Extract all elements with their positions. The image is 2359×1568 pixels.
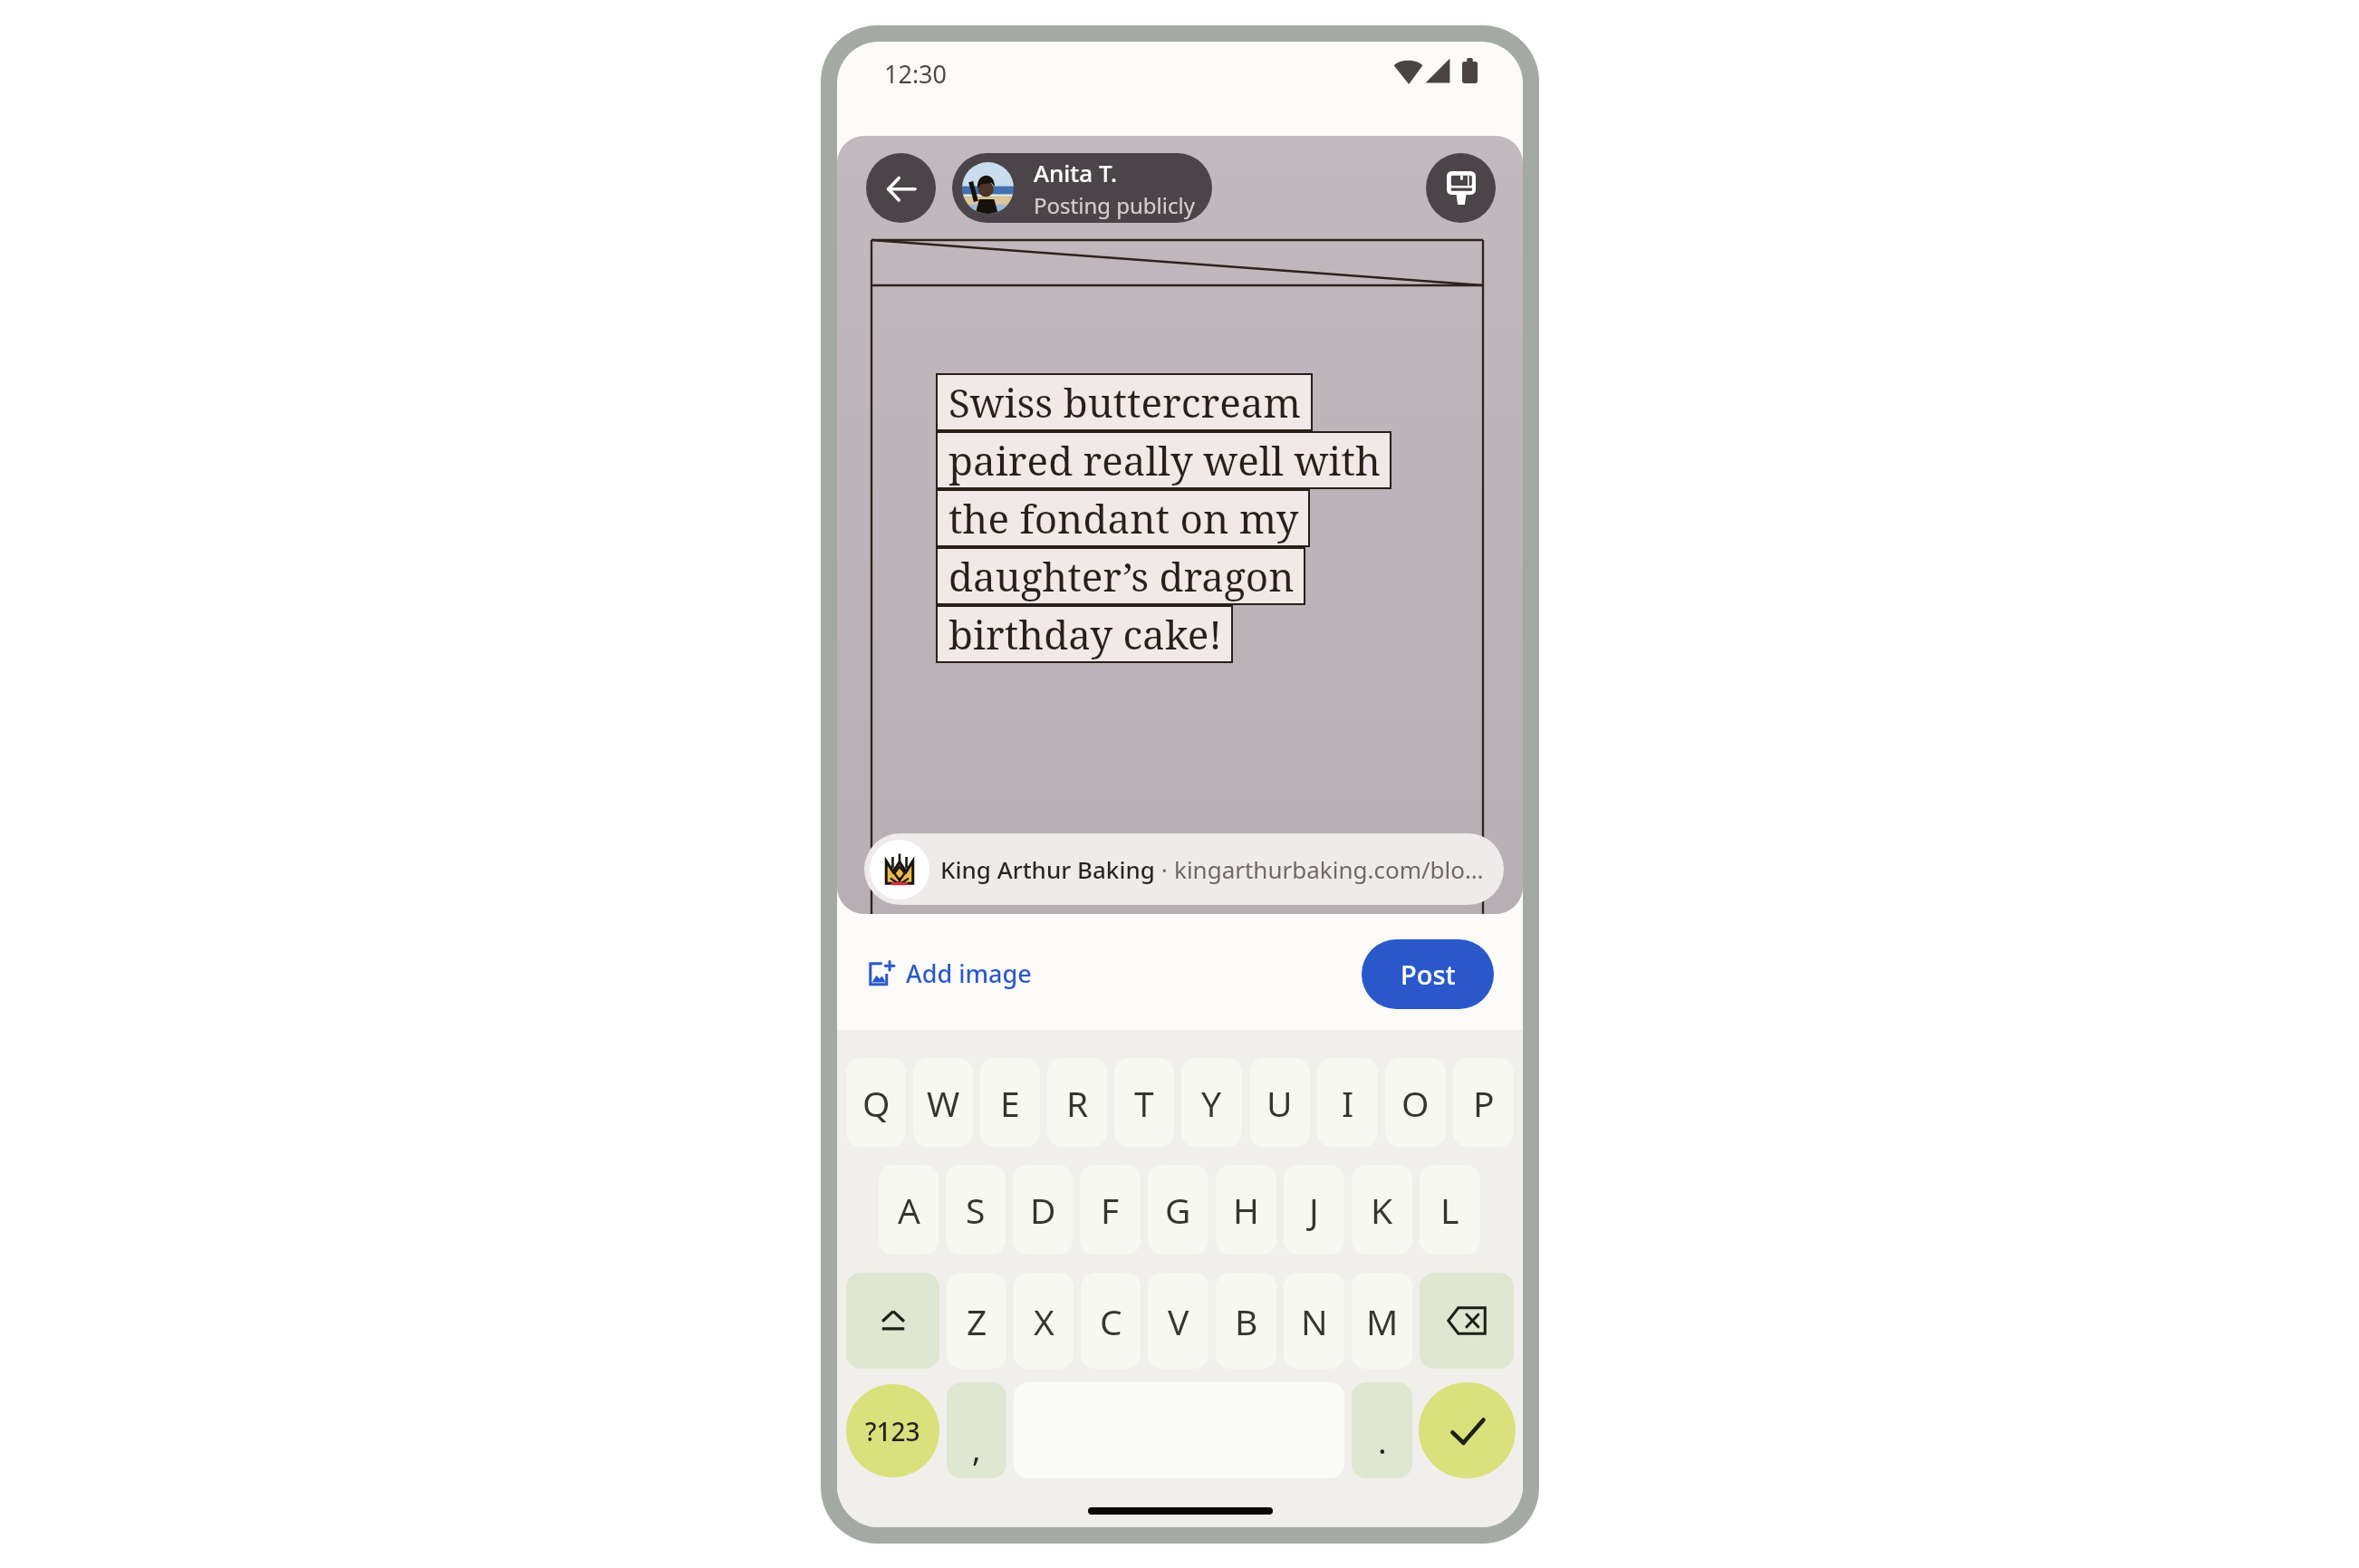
- button[interactable]: U: [1249, 1058, 1310, 1147]
- button[interactable]: Change style: [1426, 153, 1496, 223]
- staticText: kingarthurbaking.com/blo…: [1174, 853, 1484, 885]
- button[interactable]: A: [879, 1165, 939, 1255]
- staticText: O: [1401, 1079, 1430, 1127]
- button[interactable]: H: [1216, 1165, 1276, 1255]
- staticText: ·: [1155, 853, 1174, 885]
- button[interactable]: Back: [866, 153, 936, 223]
- staticText: .: [1378, 1419, 1387, 1464]
- staticText: ,: [972, 1427, 981, 1471]
- staticText: R: [1066, 1079, 1089, 1127]
- staticText: A: [898, 1186, 920, 1234]
- staticText: B: [1235, 1297, 1258, 1345]
- staticText: Swiss buttercream: [948, 375, 1302, 429]
- button[interactable]: N: [1284, 1273, 1344, 1369]
- staticText: G: [1165, 1186, 1191, 1234]
- button[interactable]: Shift: [846, 1273, 939, 1369]
- button[interactable]: K: [1352, 1165, 1412, 1255]
- staticText: V: [1168, 1297, 1189, 1345]
- staticText: H: [1233, 1186, 1259, 1234]
- staticText: Q: [862, 1079, 891, 1127]
- staticText: King Arthur Baking: [940, 853, 1155, 885]
- button[interactable]: L: [1420, 1165, 1480, 1255]
- staticText: N: [1301, 1297, 1328, 1345]
- button[interactable]: C: [1081, 1273, 1141, 1369]
- button[interactable]: E: [980, 1058, 1040, 1147]
- staticText: D: [1030, 1186, 1056, 1234]
- staticText: the fondant on my: [948, 491, 1299, 545]
- button[interactable]: O: [1385, 1058, 1446, 1147]
- staticText: daughter’s dragon: [948, 549, 1295, 603]
- button[interactable]: Add image: [857, 951, 1043, 996]
- staticText: E: [1000, 1079, 1020, 1127]
- staticText: T: [1134, 1079, 1154, 1127]
- staticText: ?123: [865, 1414, 920, 1448]
- staticText: C: [1100, 1297, 1122, 1345]
- staticText: J: [1309, 1186, 1319, 1234]
- button[interactable]: G: [1148, 1165, 1208, 1255]
- button[interactable]: T: [1114, 1058, 1174, 1147]
- button[interactable]: W: [913, 1058, 973, 1147]
- staticText: X: [1034, 1297, 1054, 1345]
- button[interactable]: Anita T.: [952, 153, 1212, 223]
- staticText: Post: [1401, 957, 1456, 992]
- button[interactable]: X: [1014, 1273, 1074, 1369]
- button[interactable]: I: [1317, 1058, 1378, 1147]
- staticText: Y: [1201, 1079, 1222, 1127]
- button[interactable]: Z: [947, 1273, 1006, 1369]
- button[interactable]: Backspace: [1420, 1273, 1514, 1369]
- button[interactable]: B: [1216, 1273, 1276, 1369]
- staticText: paired really well with: [948, 433, 1381, 487]
- button[interactable]: .: [1352, 1382, 1412, 1478]
- staticText: birthday cake!: [948, 607, 1222, 661]
- button[interactable]: D: [1013, 1165, 1073, 1255]
- button[interactable]: V: [1148, 1273, 1208, 1369]
- staticText: U: [1266, 1079, 1293, 1127]
- button[interactable]: P: [1453, 1058, 1514, 1147]
- button[interactable]: Q: [846, 1058, 906, 1147]
- staticText: M: [1366, 1297, 1399, 1345]
- button[interactable]: F: [1080, 1165, 1141, 1255]
- staticText: L: [1440, 1186, 1459, 1234]
- staticText: K: [1371, 1186, 1393, 1234]
- button[interactable]: S: [946, 1165, 1006, 1255]
- staticText: P: [1473, 1079, 1495, 1127]
- button[interactable]: R: [1047, 1058, 1107, 1147]
- staticText: Add image: [906, 957, 1032, 990]
- button[interactable]: King Arthur Baking: [864, 833, 1504, 905]
- button[interactable]: M: [1352, 1273, 1412, 1369]
- staticText: 12:30: [884, 57, 948, 91]
- button[interactable]: Done: [1419, 1382, 1516, 1478]
- staticText: I: [1342, 1079, 1354, 1127]
- button[interactable]: J: [1284, 1165, 1344, 1255]
- staticText: F: [1101, 1186, 1120, 1234]
- button[interactable]: Post: [1362, 939, 1494, 1009]
- staticText: Posting publicly: [1034, 190, 1195, 220]
- button[interactable]: Y: [1181, 1058, 1242, 1147]
- staticText: Z: [967, 1297, 987, 1345]
- button[interactable]: ?123: [846, 1384, 939, 1477]
- staticText: S: [966, 1186, 986, 1234]
- staticText: Anita T.: [1034, 157, 1118, 188]
- button[interactable]: ,: [947, 1382, 1006, 1478]
- staticText: W: [927, 1079, 960, 1127]
